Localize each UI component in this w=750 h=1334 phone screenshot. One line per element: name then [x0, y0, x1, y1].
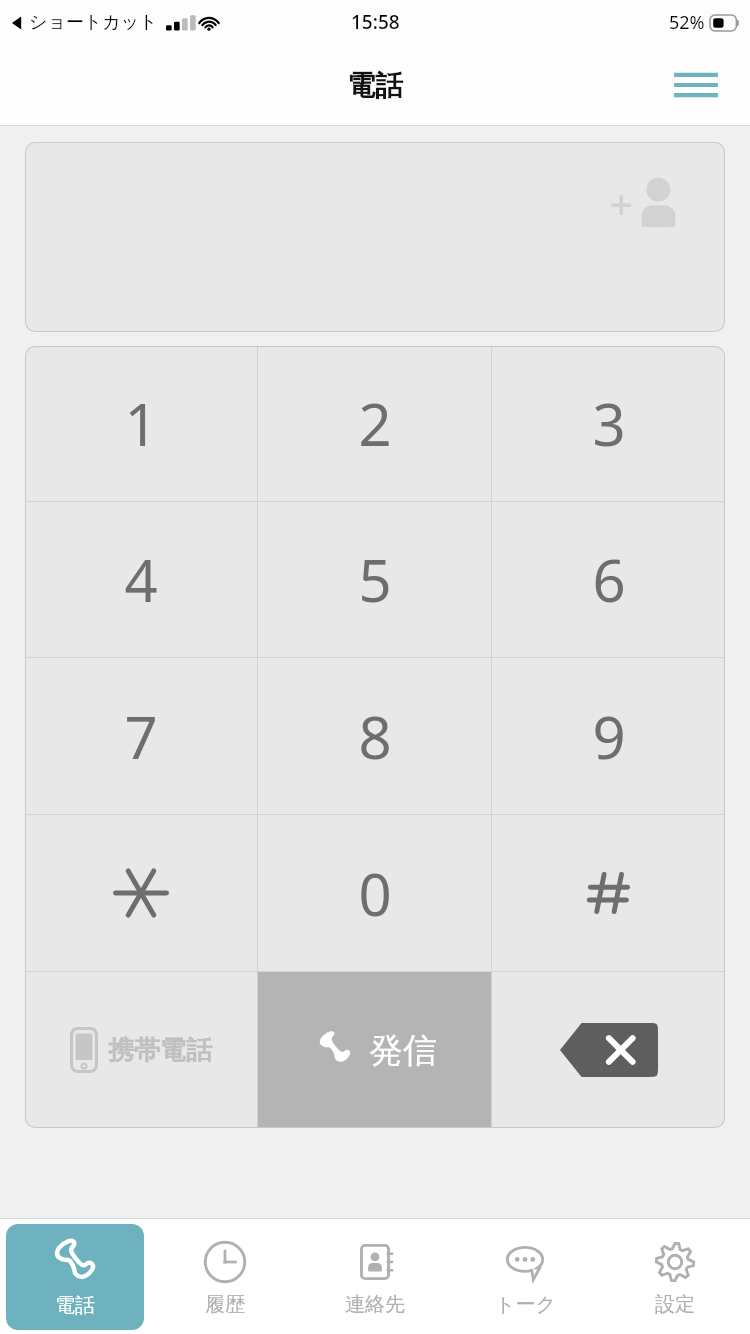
button[interactable]: 2: [258, 346, 491, 501]
staticText: 9: [592, 697, 626, 776]
button[interactable]: 携帯電話: [25, 972, 257, 1128]
button[interactable]: 発信: [258, 972, 491, 1128]
staticText: 6: [592, 540, 626, 619]
button[interactable]: 1: [25, 346, 257, 501]
staticText: 3: [592, 384, 626, 463]
staticText: 発信: [369, 1029, 437, 1072]
staticText: 4: [124, 540, 158, 619]
button[interactable]: 5: [258, 502, 491, 657]
button[interactable]: 連絡先: [300, 1219, 450, 1334]
staticText: ショートカット: [29, 11, 158, 34]
button[interactable]: [25, 815, 257, 971]
staticText: 1: [124, 384, 158, 463]
staticText: 携帯電話: [108, 1034, 212, 1067]
button[interactable]: 9: [492, 658, 725, 814]
button[interactable]: 8: [258, 658, 491, 814]
button[interactable]: トーク: [450, 1219, 600, 1334]
button[interactable]: 連絡先に追加: [609, 174, 685, 234]
button[interactable]: 削除: [492, 972, 725, 1128]
staticText: 電話: [347, 68, 403, 103]
button[interactable]: 履歴: [150, 1219, 300, 1334]
button[interactable]: 0: [258, 815, 491, 971]
button[interactable]: 3: [492, 346, 725, 501]
button[interactable]: メニュー: [670, 59, 722, 111]
staticText: 電話: [55, 1293, 95, 1318]
staticText: 52%: [669, 10, 705, 35]
staticText: 履歴: [205, 1292, 245, 1317]
staticText: トーク: [495, 1292, 556, 1317]
staticText: 15:58: [351, 9, 400, 35]
staticText: 5: [358, 540, 392, 619]
staticText: 8: [358, 697, 392, 776]
button[interactable]: 電話: [6, 1224, 144, 1330]
button[interactable]: [492, 815, 725, 971]
staticText: 2: [358, 384, 392, 463]
button[interactable]: 連絡先に追加: [25, 142, 725, 332]
staticText: 連絡先: [345, 1292, 405, 1317]
button[interactable]: 4: [25, 502, 257, 657]
button[interactable]: 6: [492, 502, 725, 657]
staticText: 設定: [655, 1292, 695, 1317]
staticText: 0: [358, 854, 392, 933]
button[interactable]: 設定: [600, 1219, 750, 1334]
button[interactable]: 7: [25, 658, 257, 814]
staticText: 7: [124, 697, 158, 776]
